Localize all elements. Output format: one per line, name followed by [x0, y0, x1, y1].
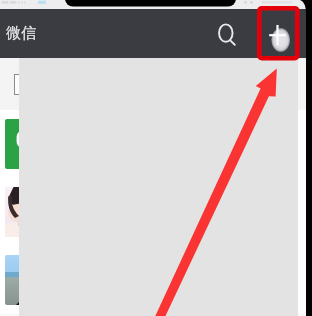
button[interactable] [0, 246, 306, 314]
button[interactable] [0, 110, 306, 178]
button[interactable] [0, 178, 306, 246]
button[interactable]: Search [206, 18, 238, 50]
button[interactable]: Add [258, 16, 294, 52]
staticText: 微信 [6, 24, 36, 43]
